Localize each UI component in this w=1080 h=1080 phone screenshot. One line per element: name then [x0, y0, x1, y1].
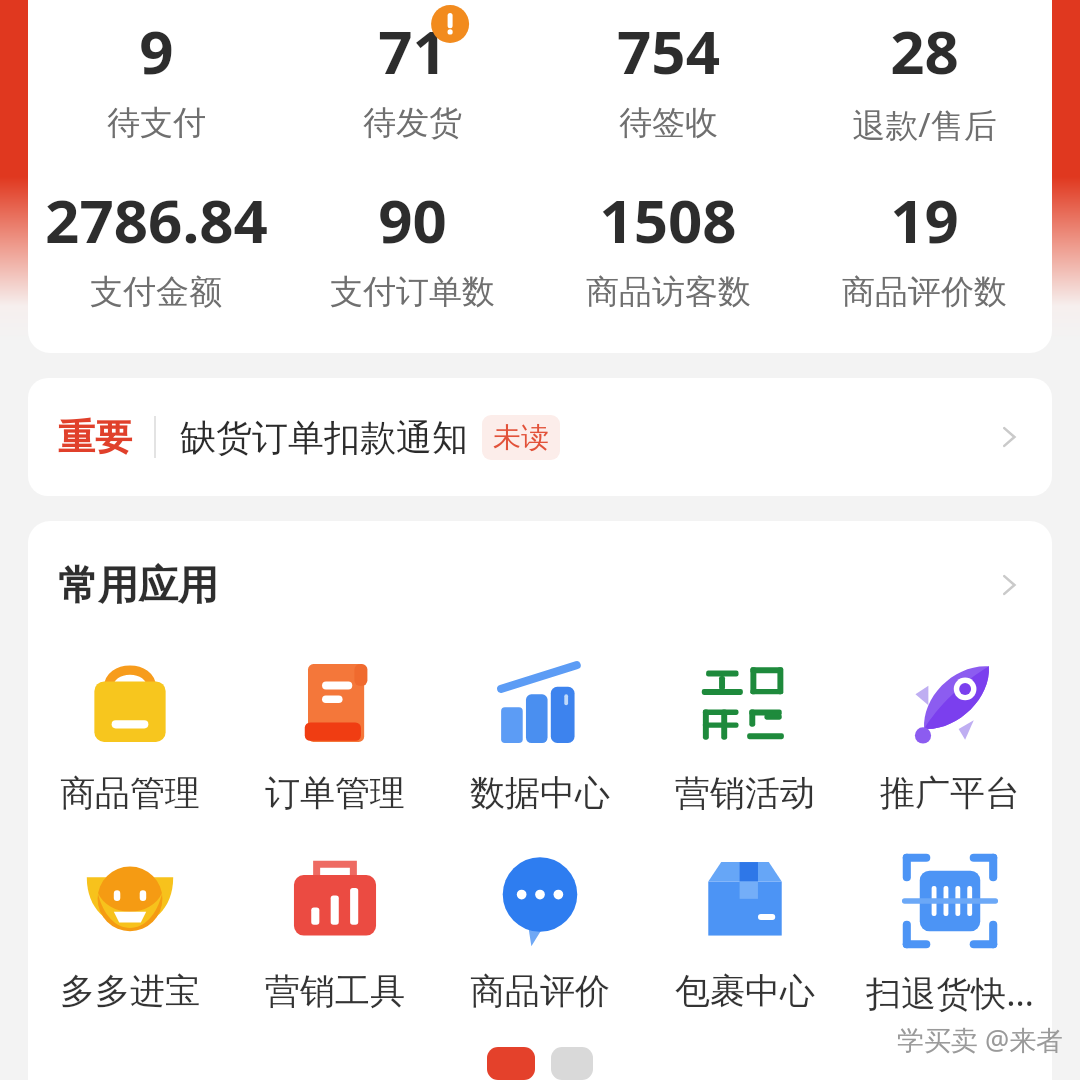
button[interactable]: 商品管理 — [28, 649, 232, 815]
staticText: 支付订单数 — [330, 271, 495, 313]
button[interactable]: 19 — [796, 173, 1052, 319]
staticText: 2786.84 — [45, 179, 268, 261]
staticText: 754 — [617, 10, 720, 92]
staticText: 商品访客数 — [586, 271, 751, 313]
staticText: 重要 — [58, 414, 132, 461]
staticText: 待发货 — [363, 102, 462, 144]
staticText: 商品评价 — [470, 969, 610, 1013]
staticText: 90 — [378, 179, 447, 261]
staticText: 多多进宝 — [60, 969, 200, 1013]
staticText: 推广平台 — [880, 771, 1020, 815]
staticText: 商品管理 — [60, 771, 200, 815]
staticText: 待签收 — [619, 102, 718, 144]
staticText: 包裹中心 — [675, 969, 815, 1013]
staticText: 常用应用 — [58, 560, 218, 610]
staticText: 订单管理 — [265, 771, 405, 815]
button[interactable]: 数据中心 — [437, 649, 642, 815]
staticText: 28 — [890, 10, 959, 92]
button[interactable]: 常用应用 — [28, 521, 1052, 649]
staticText: 营销工具 — [265, 969, 405, 1013]
button[interactable]: 订单管理 — [232, 649, 437, 815]
other: More — [992, 568, 1026, 602]
other: More — [992, 420, 1026, 454]
button[interactable]: 推广平台 — [847, 649, 1052, 815]
staticText: 数据中心 — [470, 771, 610, 815]
button[interactable]: 包裹中心 — [642, 847, 847, 1013]
button[interactable]: 71 — [284, 4, 540, 150]
staticText: 19 — [890, 179, 959, 261]
button[interactable]: 754 — [540, 4, 796, 150]
button[interactable]: 扫退货快… — [847, 847, 1052, 1017]
button[interactable]: 商品评价 — [437, 847, 642, 1013]
button[interactable]: 1508 — [540, 173, 796, 319]
button[interactable]: 营销活动 — [642, 649, 847, 815]
button[interactable]: 营销工具 — [232, 847, 437, 1013]
staticText: 退款/售后 — [852, 102, 997, 147]
staticText: 71 — [378, 10, 447, 92]
staticText: 营销活动 — [675, 771, 815, 815]
button[interactable]: 9 — [28, 4, 284, 150]
staticText: 1508 — [599, 179, 737, 261]
button[interactable]: 多多进宝 — [28, 847, 232, 1013]
button[interactable]: 2786.84 — [28, 173, 284, 319]
staticText: 学买卖 @来者 — [897, 1021, 1064, 1058]
staticText: 商品评价数 — [842, 271, 1007, 313]
staticText: 支付金额 — [90, 271, 222, 313]
button[interactable]: 90 — [284, 173, 540, 319]
staticText: 9 — [139, 10, 174, 92]
staticText: 待支付 — [107, 102, 206, 144]
button[interactable]: 28 — [796, 4, 1052, 153]
staticText: 扫退货快… — [866, 969, 1034, 1017]
staticText: 未读 — [493, 420, 549, 455]
staticText: 缺货订单扣款通知 — [180, 415, 468, 460]
button[interactable]: 重要 — [28, 378, 1052, 496]
